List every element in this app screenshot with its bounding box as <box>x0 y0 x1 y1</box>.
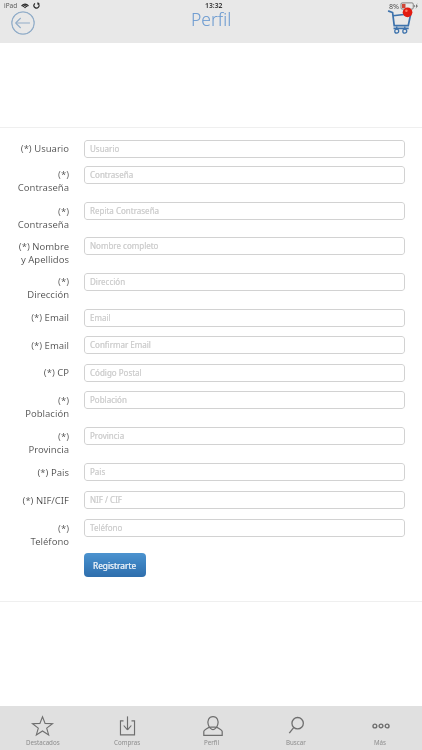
button[interactable]: Repita Contraseña <box>84 202 405 220</box>
staticText: Email <box>90 312 111 323</box>
staticText: (*) <box>58 522 69 535</box>
button[interactable]: Back <box>11 11 35 35</box>
button[interactable]: Perfil <box>170 706 254 750</box>
staticText: (*) Email <box>31 311 69 324</box>
staticText: Contraseña <box>17 218 69 231</box>
button[interactable]: Registrarte <box>84 553 146 577</box>
staticText: Provincia <box>90 430 125 441</box>
staticText: (*) Usuario <box>20 142 69 155</box>
staticText: Teléfono <box>30 535 69 548</box>
button[interactable]: Provincia <box>84 427 405 445</box>
staticText: y Apellidos <box>20 253 69 266</box>
button[interactable]: Cart <box>388 10 411 33</box>
staticText: 8% <box>389 1 400 11</box>
staticText: Perfil <box>204 738 220 746</box>
staticText: Buscar <box>286 738 306 746</box>
button[interactable]: Código Postal <box>84 364 405 382</box>
staticText: Población <box>25 407 69 420</box>
staticText: Destacados <box>26 738 60 746</box>
button[interactable]: Contraseña <box>84 166 405 184</box>
button[interactable]: Nombre completo <box>84 237 405 255</box>
staticText: Compras <box>114 738 141 746</box>
staticText: Nombre completo <box>90 240 159 251</box>
button[interactable]: Confirmar Email <box>84 336 405 354</box>
button[interactable]: Compras <box>85 706 170 750</box>
staticText: (*) <box>58 275 69 288</box>
staticText: (*) <box>58 168 69 181</box>
staticText: 13:32 <box>205 1 223 10</box>
button[interactable]: Más <box>338 706 422 750</box>
button[interactable]: Email <box>84 309 405 327</box>
staticText: Usuario <box>90 143 120 154</box>
staticText: Teléfono <box>90 522 123 533</box>
staticText: iPad <box>4 1 18 10</box>
staticText: Población <box>90 394 127 405</box>
staticText: (*) <box>58 205 69 218</box>
button[interactable]: Teléfono <box>84 519 405 537</box>
button[interactable]: Pais <box>84 463 405 481</box>
staticText: (*) NIF/CIF <box>22 494 69 507</box>
staticText: Pais <box>90 466 106 477</box>
staticText: (*) CP <box>43 366 69 379</box>
button[interactable]: Población <box>84 391 405 409</box>
staticText: Confirmar Email <box>90 339 151 350</box>
staticText: Perfil <box>191 7 232 31</box>
button[interactable]: Destacados <box>0 706 85 750</box>
staticText: Código Postal <box>90 367 142 378</box>
staticText: Provincia <box>28 443 69 456</box>
button[interactable]: Usuario <box>84 140 405 158</box>
staticText: Contraseña <box>17 181 69 194</box>
staticText: Registrarte <box>93 560 137 571</box>
staticText: NIF / CIF <box>90 494 122 505</box>
staticText: Repita Contraseña <box>90 205 160 216</box>
staticText: (*) <box>58 394 69 407</box>
staticText: (*) Nombre <box>18 240 69 253</box>
button[interactable]: NIF / CIF <box>84 491 405 509</box>
staticText: Más <box>374 738 387 746</box>
button[interactable]: Dirección <box>84 273 405 291</box>
staticText: (*) <box>58 430 69 443</box>
staticText: Dirección <box>90 276 126 287</box>
staticText: Contraseña <box>90 169 134 180</box>
staticText: (*) Email <box>31 339 69 352</box>
staticText: Dirección <box>27 288 69 301</box>
button[interactable]: Buscar <box>254 706 338 750</box>
staticText: (*) Pais <box>37 466 69 479</box>
